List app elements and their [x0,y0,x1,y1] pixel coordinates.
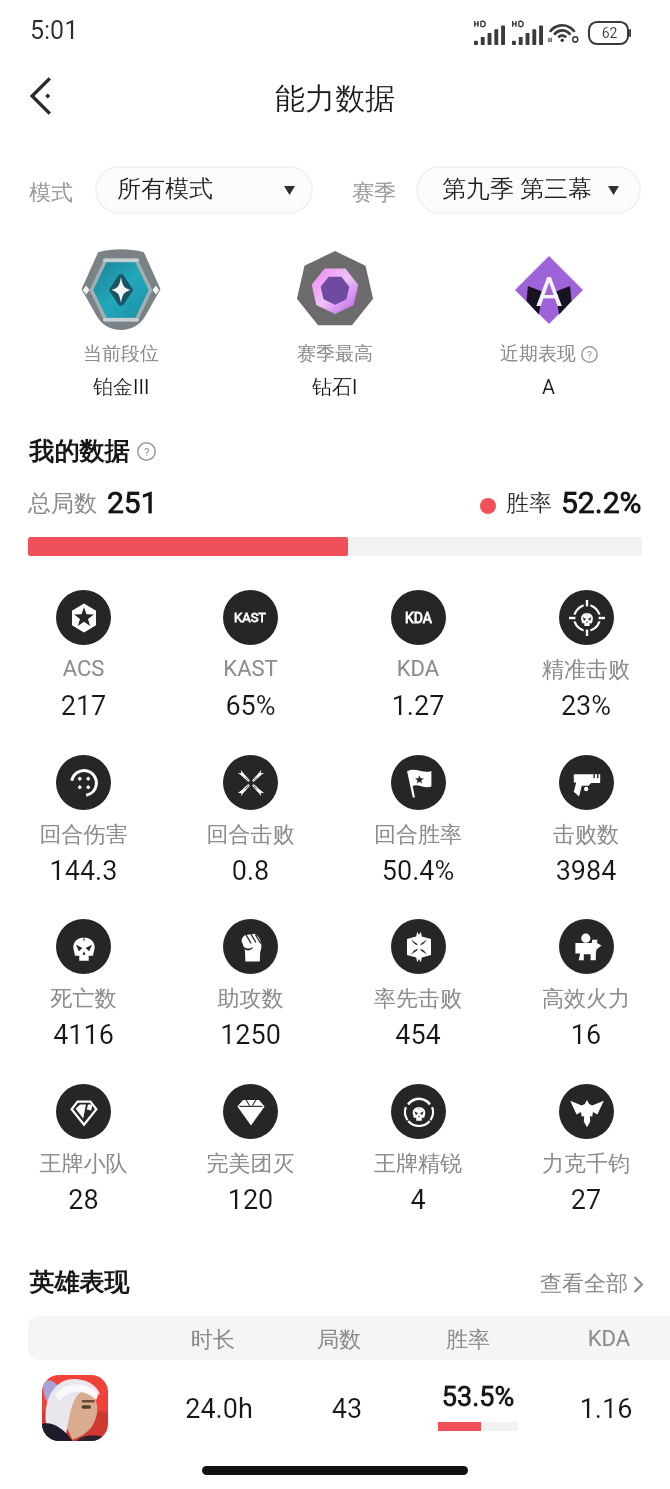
staticText: ACS [0,656,167,682]
staticText: 52.2% [561,485,642,520]
staticText: 完美团灭 [167,1150,334,1178]
staticText: 0.8 [167,855,334,887]
staticText: 高效火力 [502,985,670,1013]
button[interactable]: 回合击败 [167,755,334,900]
button[interactable]: 高效火力 [502,919,670,1064]
staticText: 王牌小队 [0,1150,167,1178]
staticText: 1.16 [536,1393,670,1425]
staticText: 王牌精锐 [334,1150,502,1178]
staticText: 赛季 [352,179,396,207]
button[interactable]: 力克千钧 [502,1084,670,1229]
staticText: 120 [167,1184,334,1216]
button[interactable]: KAST [167,590,334,735]
staticText: 251 [107,485,158,520]
button[interactable]: 当前段位 [14,245,228,400]
button[interactable]: 完美团灭 [167,1084,334,1229]
staticText: 查看全部 [540,1270,628,1298]
staticText: 铂金III [93,375,150,400]
staticText: A [542,375,556,398]
staticText: 回合伤害 [0,821,167,849]
staticText: 当前段位 [83,342,159,366]
staticText: 27 [502,1184,670,1216]
button[interactable]: 死亡数 [0,919,167,1064]
staticText: 5:01 [30,16,79,45]
staticText: 时长 [153,1326,273,1354]
button[interactable]: 率先击败 [334,919,502,1064]
button[interactable]: 赛季最高 [228,245,442,400]
staticText: 我的数据 [29,436,129,467]
staticText: 3984 [502,855,670,887]
button[interactable]: 助攻数 [167,919,334,1064]
staticText: ? [144,445,150,459]
button[interactable]: 击败数 [502,755,670,900]
button[interactable]: Back [16,70,68,122]
button[interactable]: 查看全部 [540,1270,643,1298]
staticText: 所有模式 [117,174,213,204]
staticText: 454 [334,1019,502,1051]
staticText: A [536,269,563,316]
staticText: 率先击败 [334,985,502,1013]
staticText: KDA [334,656,502,682]
button[interactable]: 回合胜率 [334,755,502,900]
staticText: 模式 [29,179,73,207]
staticText: 28 [0,1184,167,1216]
staticText: 第九季 第三幕 [442,174,592,204]
staticText: 钻石I [312,375,358,400]
staticText: 24.0h [149,1393,289,1425]
staticText: 回合胜率 [334,821,502,849]
button[interactable]: 所有模式 [95,166,313,214]
staticText: 击败数 [502,821,670,849]
staticText: 死亡数 [0,985,167,1013]
staticText: 23% [502,690,670,722]
staticText: 英雄表现 [29,1267,129,1298]
staticText: 局数 [279,1326,399,1354]
button[interactable]: 王牌精锐 [334,1084,502,1229]
staticText: KAST [167,656,334,682]
staticText: KDA [405,610,432,626]
staticText: 胜率 [506,489,552,518]
staticText: 62 [590,25,629,41]
button[interactable]: 回合伤害 [0,755,167,900]
button[interactable]: ACS [0,590,167,735]
button[interactable]: KDA [334,590,502,735]
staticText: 16 [502,1019,670,1051]
button[interactable]: 第九季 第三幕 [416,166,641,214]
staticText: 65% [167,690,334,722]
staticText: 50.4% [334,855,502,887]
staticText: 4 [334,1184,502,1216]
staticText: 1250 [167,1019,334,1051]
staticText: 回合击败 [167,821,334,849]
staticText: 胜率 [408,1326,528,1354]
staticText: 赛季最高 [297,342,373,366]
staticText: 4116 [0,1019,167,1051]
staticText: 144.3 [0,855,167,887]
button[interactable]: 王牌小队 [0,1084,167,1229]
staticText: 43 [277,1393,417,1425]
staticText: 1.27 [334,690,502,722]
staticText: 217 [0,690,167,722]
button[interactable]: A [442,245,656,400]
staticText: KAST [234,610,267,625]
staticText: 能力数据 [0,80,670,118]
staticText: 近期表现 [500,342,576,366]
staticText: 精准击败 [502,656,670,684]
staticText: ? [587,349,592,361]
staticText: KDA [549,1326,669,1352]
staticText: 53.5% [408,1381,548,1413]
staticText: 助攻数 [167,985,334,1013]
button[interactable]: 精准击败 [502,590,670,735]
staticText: 总局数 [28,489,97,518]
button[interactable] [0,1362,670,1458]
staticText: 力克千钧 [502,1150,670,1178]
